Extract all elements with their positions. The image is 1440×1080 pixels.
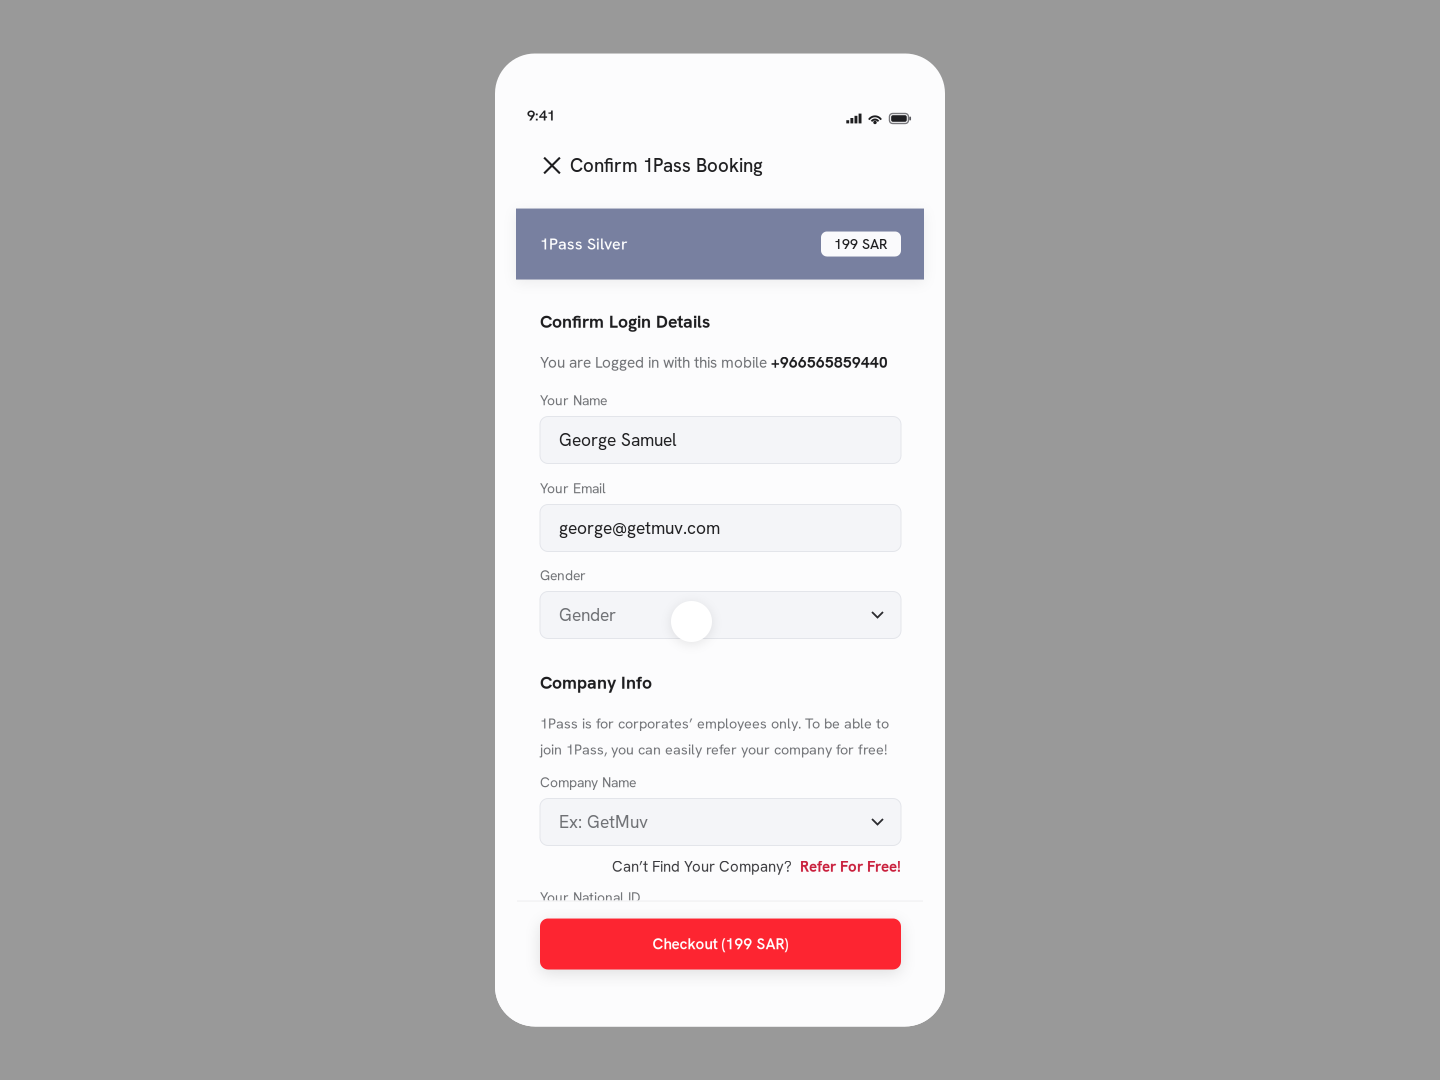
staticText: 199 SAR — [834, 235, 888, 253]
button[interactable]: George Samuel — [540, 416, 901, 463]
button[interactable]: george@getmuv.com — [540, 504, 901, 551]
staticText: George Samuel — [559, 429, 677, 451]
staticText: Confirm 1Pass Booking — [570, 153, 763, 178]
staticText: 1Pass Silver — [540, 234, 628, 254]
staticText: Company Info — [540, 671, 652, 694]
staticText: You are Logged in with this mobile — [540, 352, 771, 372]
staticText: Can’t Find Your Company? — [612, 857, 792, 876]
staticText: Company Name — [540, 773, 636, 792]
staticText: Confirm Login Details — [540, 310, 710, 333]
button[interactable]: Gender — [540, 591, 901, 638]
staticText: Checkout (199 SAR) — [652, 934, 788, 954]
staticText: join 1Pass, you can easily refer your co… — [540, 740, 887, 759]
staticText: george@getmuv.com — [559, 517, 720, 539]
button[interactable]: Refer For Free! — [792, 857, 901, 876]
staticText: Your National ID — [540, 888, 640, 907]
staticText: Gender — [540, 566, 586, 585]
staticText: Your Email — [540, 479, 606, 498]
staticText: Ex: GetMuv — [559, 811, 648, 833]
staticText: Gender — [559, 604, 616, 626]
button[interactable]: Ex: GetMuv — [540, 798, 901, 845]
staticText: Your Name — [540, 391, 607, 410]
staticText: 1Pass is for corporates’ employees only.… — [540, 714, 889, 733]
button[interactable]: Close — [539, 152, 565, 178]
staticText: Refer For Free! — [792, 857, 901, 876]
button[interactable]: Checkout (199 SAR) — [540, 918, 901, 969]
staticText: +966565859440 — [771, 352, 888, 372]
staticText: 9:41 — [527, 106, 555, 125]
